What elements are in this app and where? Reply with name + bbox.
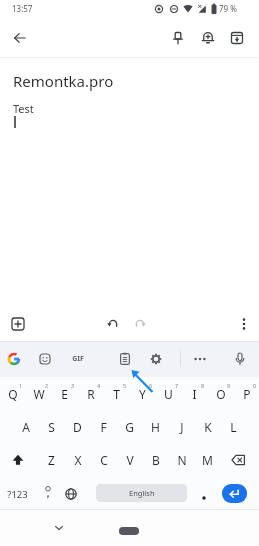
button[interactable] — [232, 312, 256, 336]
staticText: 3 — [71, 382, 75, 389]
button[interactable] — [34, 348, 56, 370]
staticText: 0 — [253, 382, 257, 389]
button[interactable] — [5, 311, 31, 337]
button[interactable] — [229, 348, 251, 370]
button[interactable]: G — [117, 411, 142, 443]
button[interactable] — [36, 479, 60, 509]
button[interactable]: GIF — [58, 349, 98, 369]
button[interactable]: P — [234, 378, 259, 410]
button[interactable]: F — [91, 411, 116, 443]
button[interactable] — [59, 479, 83, 509]
button[interactable]: B — [143, 444, 168, 476]
staticText: R — [87, 386, 95, 402]
staticText: GIF — [72, 354, 84, 364]
button[interactable] — [193, 479, 215, 509]
button[interactable] — [189, 348, 211, 370]
staticText: 6 — [149, 382, 153, 389]
button[interactable] — [8, 26, 32, 50]
button[interactable] — [119, 527, 139, 535]
staticText: 9 — [227, 382, 231, 389]
staticText: A — [22, 419, 30, 435]
staticText: M — [202, 452, 213, 468]
staticText: U — [164, 386, 173, 402]
staticText: O — [216, 386, 226, 402]
staticText: S — [48, 419, 55, 435]
button[interactable] — [145, 348, 167, 370]
button[interactable]: V — [117, 444, 142, 476]
button[interactable]: M — [195, 444, 220, 476]
staticText: Test — [13, 101, 34, 116]
button[interactable] — [4, 349, 24, 369]
button[interactable] — [196, 26, 220, 50]
staticText: L — [230, 419, 237, 435]
button[interactable]: O — [208, 378, 233, 410]
staticText: English — [129, 488, 155, 498]
button[interactable] — [114, 348, 136, 370]
button[interactable]: L — [221, 411, 246, 443]
staticText: 2 — [45, 382, 49, 389]
staticText: X — [74, 452, 82, 468]
staticText: 4 — [97, 382, 101, 389]
button[interactable]: Q — [0, 378, 25, 410]
staticText: B — [152, 452, 160, 468]
button[interactable] — [222, 484, 247, 503]
button[interactable]: U — [156, 378, 181, 410]
staticText: I — [192, 386, 197, 402]
staticText: 1 — [19, 382, 23, 389]
button[interactable] — [225, 26, 249, 50]
button[interactable]: H — [143, 411, 168, 443]
button[interactable]: K — [195, 411, 220, 443]
staticText: H — [151, 419, 160, 435]
staticText: K — [204, 419, 212, 435]
staticText: N — [177, 452, 187, 468]
staticText: Z — [48, 452, 55, 468]
button[interactable]: E — [52, 378, 77, 410]
staticText: P — [243, 386, 251, 402]
staticText: ?123 — [7, 488, 28, 501]
staticText: 5 — [123, 382, 127, 389]
staticText: Y — [139, 386, 146, 402]
staticText: G — [125, 419, 134, 435]
button[interactable]: W — [26, 378, 51, 410]
button[interactable] — [49, 520, 69, 536]
staticText: V — [126, 452, 134, 468]
button[interactable]: Y — [130, 378, 155, 410]
button[interactable] — [4, 445, 32, 475]
button[interactable]: X — [65, 444, 90, 476]
button[interactable]: A — [13, 411, 38, 443]
staticText: W — [33, 386, 45, 402]
button[interactable]: J — [169, 411, 194, 443]
button[interactable]: I — [182, 378, 207, 410]
staticText: J — [180, 419, 184, 435]
button[interactable]: C — [91, 444, 116, 476]
staticText: T — [113, 386, 120, 402]
staticText: Q — [8, 386, 18, 402]
staticText: 7 — [175, 382, 179, 389]
staticText: Remontka.pro — [13, 71, 114, 91]
button[interactable]: N — [169, 444, 194, 476]
button[interactable]: T — [104, 378, 129, 410]
button[interactable] — [225, 445, 253, 475]
staticText: 79 % — [219, 3, 237, 14]
button[interactable] — [100, 311, 126, 337]
staticText: F — [100, 419, 107, 435]
button[interactable]: S — [39, 411, 64, 443]
staticText: 8 — [201, 382, 205, 389]
staticText: 13:57 — [12, 3, 33, 14]
staticText: C — [100, 452, 108, 468]
button[interactable] — [166, 26, 190, 50]
button[interactable]: D — [65, 411, 90, 443]
staticText: E — [61, 386, 68, 402]
staticText: D — [73, 419, 82, 435]
button[interactable]: English — [96, 484, 187, 502]
button[interactable]: R — [78, 378, 103, 410]
button[interactable] — [127, 311, 153, 337]
button[interactable]: ?123 — [0, 479, 35, 509]
button[interactable]: Z — [39, 444, 64, 476]
